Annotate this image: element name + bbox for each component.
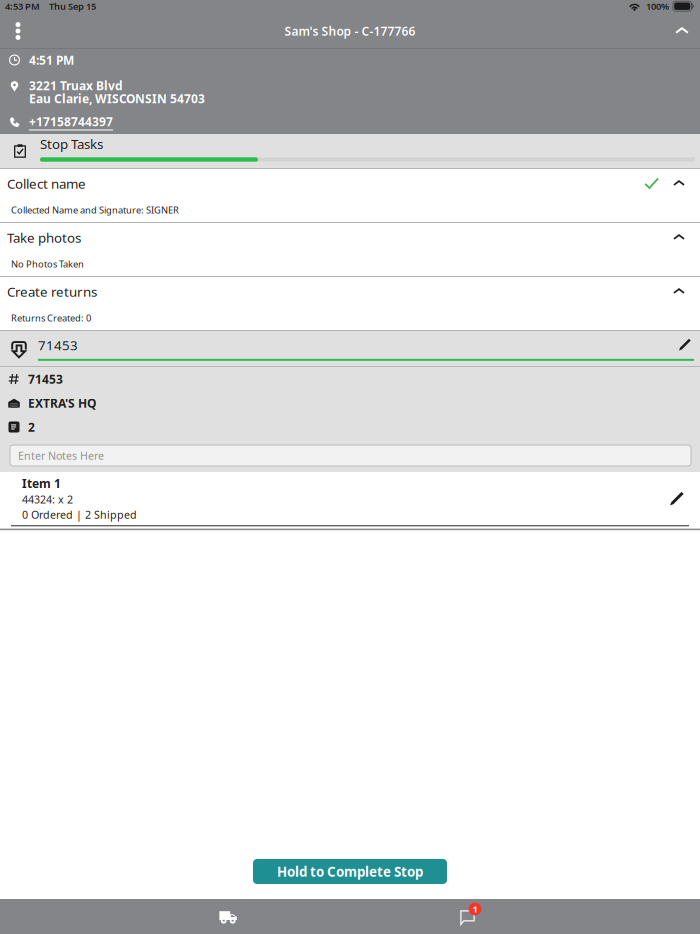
staticText: 1 [472, 903, 477, 915]
staticText: Hold to Complete Stop [277, 863, 423, 880]
button[interactable]: Hold to Complete Stop [253, 859, 447, 884]
staticText: Enter Notes Here [18, 448, 104, 463]
staticText: Sam's Shop - C-177766 [284, 23, 415, 39]
staticText: 71453 [28, 371, 63, 387]
button[interactable]: Messages [408, 899, 528, 934]
staticText: Returns Created: 0 [11, 312, 91, 324]
staticText: 44324: x 2 [22, 492, 73, 506]
staticText: 4:53 PM [5, 0, 40, 12]
button[interactable]: Collapse header [665, 20, 699, 42]
staticText: 100% [646, 0, 669, 12]
staticText: +17158744397 [29, 113, 113, 129]
button[interactable]: +17158744397 [0, 115, 700, 134]
staticText: Item 1 [22, 475, 61, 491]
staticText: 0 Ordered | 2 Shipped [22, 507, 137, 522]
button[interactable]: More options [1, 20, 35, 42]
staticText: 71453 [38, 336, 78, 354]
button[interactable]: Edit return [670, 331, 700, 358]
button[interactable]: Take photos [0, 223, 700, 276]
button[interactable]: Edit item [659, 480, 695, 516]
button[interactable]: Create returns [0, 277, 700, 330]
staticText: EXTRA'S HQ [28, 395, 96, 411]
button[interactable]: Route [168, 899, 288, 934]
staticText: Create returns [7, 283, 97, 300]
staticText: 3221 Truax Blvd [29, 77, 123, 93]
staticText: Collect name [7, 175, 86, 192]
staticText: 2 [28, 419, 35, 435]
staticText: 4:51 PM [29, 52, 74, 68]
staticText: Eau Clarie, WISCONSIN 54703 [29, 90, 205, 106]
staticText: Thu Sep 15 [49, 0, 96, 12]
button[interactable]: Collect name [0, 169, 700, 222]
staticText: Take photos [7, 229, 81, 246]
staticText: Stop Tasks [40, 135, 103, 153]
staticText: No Photos Taken [11, 258, 84, 270]
staticText: Collected Name and Signature: SIGNER [11, 204, 179, 216]
